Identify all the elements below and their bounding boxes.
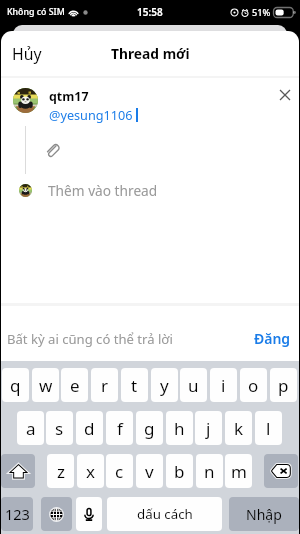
button[interactable]: v — [136, 454, 163, 488]
button[interactable]: p — [270, 368, 297, 402]
staticText: e — [70, 374, 80, 397]
staticText: d — [84, 417, 95, 440]
button[interactable] — [76, 497, 102, 531]
button[interactable]: h — [166, 411, 193, 445]
staticText: Không có SIM — [7, 6, 65, 18]
staticText: Hủy — [12, 43, 42, 65]
button[interactable]: i — [210, 368, 237, 402]
button[interactable]: f — [106, 411, 133, 445]
staticText: f — [117, 417, 123, 440]
staticText: s — [55, 417, 64, 440]
button[interactable]: Shift — [1, 454, 35, 488]
staticText: z — [57, 460, 65, 483]
staticText: a — [26, 417, 36, 440]
staticText: m — [231, 460, 247, 483]
staticText: c — [115, 460, 124, 483]
staticText: i — [221, 374, 226, 397]
staticText: w — [39, 374, 53, 397]
button[interactable]: a — [17, 411, 44, 445]
button[interactable]: o — [240, 368, 267, 402]
button[interactable]: u — [180, 368, 207, 402]
staticText: Thêm vào thread — [48, 181, 158, 200]
staticText: q — [10, 374, 21, 397]
staticText: Nhập — [246, 505, 282, 524]
staticText: Bất kỳ ai cũng có thể trả lời — [7, 330, 173, 348]
button[interactable]: w — [32, 368, 59, 402]
button[interactable]: Hủy — [1, 35, 53, 73]
staticText: t — [131, 374, 138, 397]
button[interactable]: s — [46, 411, 73, 445]
staticText: r — [101, 374, 109, 397]
button[interactable]: Ngôn ngữ — [41, 497, 72, 531]
staticText: n — [204, 460, 215, 483]
button[interactable]: Thêm vào thread — [19, 179, 299, 201]
button[interactable]: d — [76, 411, 103, 445]
button[interactable]: m — [225, 454, 252, 488]
staticText: o — [248, 374, 259, 397]
button[interactable]: j — [195, 411, 222, 445]
button[interactable]: t — [121, 368, 148, 402]
button[interactable]: 123 — [1, 497, 33, 531]
staticText: j — [206, 417, 211, 440]
staticText: y — [160, 374, 169, 397]
button[interactable]: k — [225, 411, 252, 445]
staticText: qtm17 — [49, 88, 89, 105]
button[interactable]: y — [151, 368, 178, 402]
button[interactable]: Xóa — [264, 454, 298, 488]
staticText: 51% — [252, 6, 271, 19]
button[interactable]: c — [106, 454, 133, 488]
button[interactable]: b — [166, 454, 193, 488]
staticText: Đăng — [254, 329, 291, 348]
button[interactable]: g — [136, 411, 163, 445]
staticText: k — [234, 417, 244, 440]
button[interactable]: e — [61, 368, 88, 402]
staticText: x — [86, 460, 95, 483]
button[interactable]: Đóng — [274, 84, 296, 106]
staticText: v — [145, 460, 154, 483]
button[interactable]: z — [47, 454, 74, 488]
button[interactable]: q — [2, 368, 29, 402]
button[interactable]: Nhập — [229, 497, 299, 531]
button[interactable]: l — [255, 411, 282, 445]
staticText: g — [144, 417, 155, 440]
button[interactable]: x — [77, 454, 104, 488]
button[interactable]: n — [196, 454, 223, 488]
staticText: 123 — [5, 504, 30, 524]
staticText: Thread mới — [111, 44, 190, 63]
staticText: l — [266, 417, 271, 440]
button[interactable]: r — [91, 368, 118, 402]
button[interactable]: Đăng — [246, 325, 299, 352]
staticText: 15:58 — [137, 5, 163, 19]
staticText: b — [174, 460, 185, 483]
button[interactable]: Đính kèm — [45, 143, 59, 157]
staticText: h — [174, 417, 185, 440]
staticText: p — [278, 374, 289, 397]
staticText: u — [188, 374, 199, 397]
button[interactable]: dấu cách — [107, 497, 222, 531]
staticText: dấu cách — [137, 505, 193, 523]
staticText: @yesung1106 — [49, 106, 133, 123]
